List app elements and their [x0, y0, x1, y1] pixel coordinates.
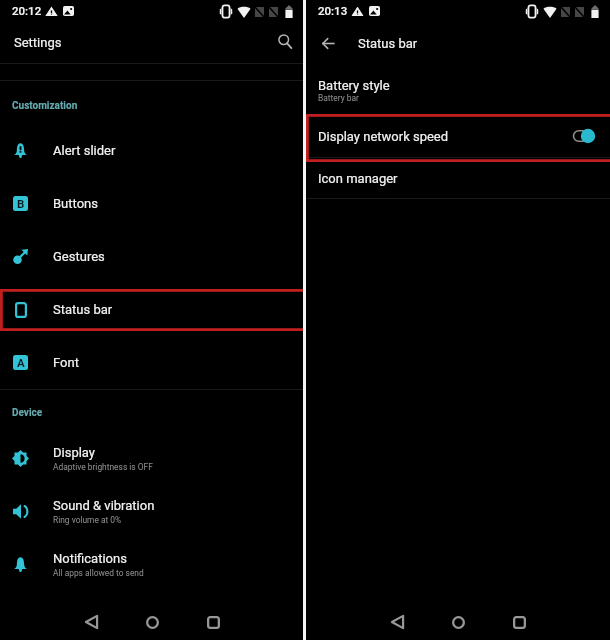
staticText: All apps allowed to send — [53, 568, 144, 578]
button[interactable]: Home — [435, 599, 481, 640]
button[interactable]: Status bar — [0, 283, 303, 336]
button[interactable]: A — [0, 336, 303, 389]
staticText: Status bar — [358, 36, 418, 51]
button[interactable]: Settings — [0, 27, 303, 63]
staticText: Buttons — [53, 196, 98, 211]
staticText: Sound & vibration — [53, 498, 155, 513]
staticText: Notifications — [53, 551, 127, 566]
staticText: 20:13 — [318, 4, 348, 17]
staticText: Adaptive brightness is OFF — [53, 462, 153, 472]
button[interactable]: Notifications — [0, 538, 303, 591]
staticText: A — [17, 356, 25, 369]
button[interactable]: Back — [374, 599, 420, 640]
staticText: Settings — [14, 35, 62, 50]
button[interactable]: Search — [270, 27, 299, 56]
staticText: Display — [53, 445, 95, 460]
button[interactable]: Battery style — [306, 70, 610, 114]
staticText: Alert slider — [53, 143, 116, 158]
button[interactable]: Back — [68, 599, 114, 640]
button[interactable]: Gestures — [0, 230, 303, 283]
button[interactable]: Display network speed — [306, 116, 610, 157]
staticText: Ring volume at 0% — [53, 515, 122, 525]
button[interactable]: Home — [129, 599, 175, 640]
staticText: Battery style — [318, 78, 390, 93]
button[interactable]: Back — [313, 28, 343, 58]
staticText: 20:12 — [12, 4, 42, 17]
button[interactable]: Sound & vibration — [0, 485, 303, 538]
staticText: Status bar — [53, 302, 113, 317]
button[interactable]: Recent apps — [496, 599, 542, 640]
staticText: Font — [53, 355, 79, 370]
staticText: Gestures — [53, 249, 105, 264]
staticText: Display network speed — [318, 129, 449, 144]
button[interactable]: B — [0, 177, 303, 230]
button[interactable]: Alert slider — [0, 124, 303, 177]
button[interactable]: Display — [0, 432, 303, 485]
button[interactable]: Icon manager — [306, 158, 610, 198]
staticText: B — [17, 197, 25, 210]
button[interactable]: Recent apps — [190, 599, 236, 640]
staticText: Battery bar — [318, 93, 359, 103]
staticText: Icon manager — [318, 171, 398, 186]
staticText: Customization — [12, 100, 78, 112]
staticText: Device — [12, 407, 43, 419]
